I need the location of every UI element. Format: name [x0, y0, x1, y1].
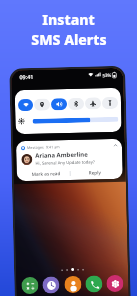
button[interactable]: Contacts: [64, 276, 82, 293]
button[interactable]: Mark as read: [22, 170, 70, 177]
button[interactable]: Quick setting: [34, 98, 50, 111]
staticText: Instant: [42, 10, 95, 29]
staticText: 9:41 am: [46, 144, 60, 149]
button[interactable]: Phone: [85, 275, 103, 293]
button[interactable]: Clock: [42, 276, 60, 294]
button[interactable]: Quick setting: [102, 97, 118, 109]
button[interactable]: Collapse: [113, 143, 118, 148]
staticText: Messages: [27, 145, 44, 150]
button[interactable]: Quick setting: [85, 97, 101, 110]
staticText: Ariana Amberline: [35, 150, 88, 160]
button[interactable]: Quick setting: [68, 98, 84, 110]
button[interactable]: Calculator: [21, 277, 39, 294]
staticText: SMS Alerts: [31, 30, 107, 49]
staticText: Reply: [89, 169, 102, 175]
button[interactable]: Quick setting: [18, 99, 33, 111]
button[interactable]: Brightness: [32, 117, 118, 124]
button[interactable]: Gallery: [106, 275, 124, 292]
staticText: Mark as read: [32, 170, 61, 177]
staticText: 09:41: [19, 73, 34, 80]
button[interactable]: Messages: [16, 139, 123, 181]
button[interactable]: Reply: [71, 169, 119, 176]
button[interactable]: Quick setting: [51, 98, 67, 110]
staticText: Hi, Sarena! Any Update today?: [35, 159, 95, 167]
staticText: 53%: [102, 72, 111, 78]
